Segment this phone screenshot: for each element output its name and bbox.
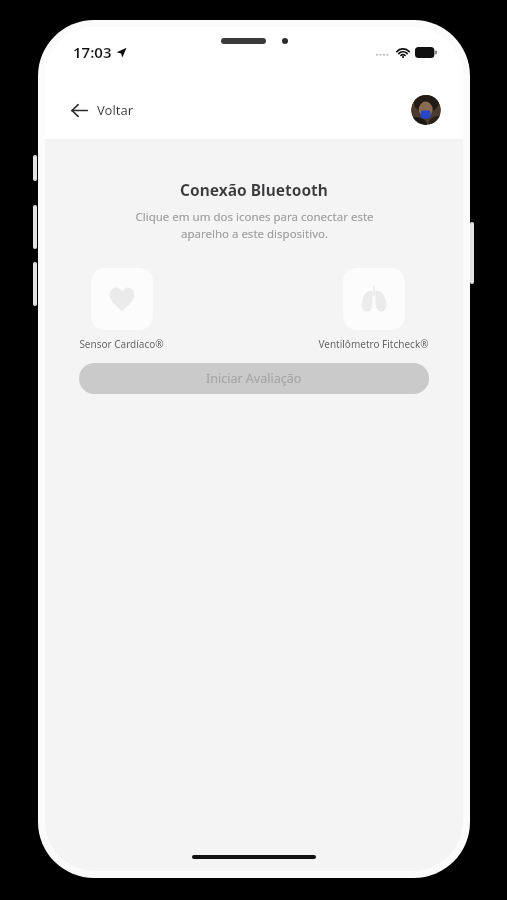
staticText: Iniciar Avaliação <box>206 370 302 387</box>
button[interactable]: Iniciar Avaliação <box>79 363 429 394</box>
staticText: Sensor Cardíaco® <box>79 337 164 351</box>
staticText: Conexão Bluetooth <box>180 179 328 200</box>
button[interactable]: Perfil <box>411 95 441 125</box>
button[interactable]: Voltar <box>67 95 138 125</box>
button[interactable]: Ventilômetro Fitcheck® <box>343 268 405 330</box>
staticText: Voltar <box>97 101 134 119</box>
staticText: 17:03 <box>73 42 112 62</box>
button[interactable]: Sensor Cardíaco® <box>91 268 153 330</box>
staticText: Ventilômetro Fitcheck® <box>318 337 429 351</box>
staticText: Clique em um dos icones para conectar es… <box>135 209 374 242</box>
